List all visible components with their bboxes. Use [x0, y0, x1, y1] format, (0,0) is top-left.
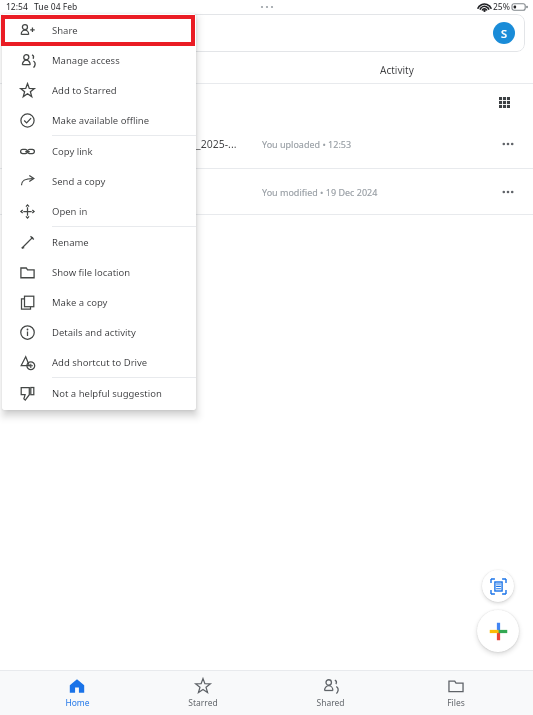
staticText: Add shortcut to Drive [52, 356, 148, 369]
button[interactable]: Shared [280, 671, 380, 715]
button[interactable]: Show file location [2, 257, 196, 287]
button[interactable]: Account [493, 22, 515, 44]
button[interactable]: Share [2, 15, 196, 45]
staticText: Add to Starred [52, 84, 117, 97]
staticText: Copy link [52, 145, 93, 158]
staticText: You modified • 19 Dec 2024 [262, 186, 378, 198]
staticText: Manage access [52, 54, 120, 67]
button[interactable]: Add shortcut to Drive [2, 347, 196, 377]
button[interactable]: New [477, 610, 519, 652]
button[interactable]: Manage access [2, 45, 196, 75]
button[interactable]: Home [27, 671, 127, 715]
staticText: Details and activity [52, 326, 136, 339]
staticText: Not a helpful suggestion [52, 387, 162, 400]
staticText: Activity [380, 63, 414, 77]
button[interactable]: Scan [482, 570, 514, 602]
staticText: 25% [493, 1, 510, 13]
button[interactable]: More options [495, 179, 521, 205]
button[interactable]: Details and activity [2, 317, 196, 347]
button[interactable]: Rename [2, 227, 196, 257]
staticText: Share [52, 24, 78, 37]
staticText: S [501, 26, 508, 41]
button[interactable]: Send a copy [2, 166, 196, 196]
button[interactable]: Make a copy [2, 287, 196, 317]
staticText: Files [447, 697, 465, 709]
button[interactable]: Not a helpful suggestion [2, 378, 196, 408]
button[interactable]: Add to Starred [2, 75, 196, 105]
staticText: You uploaded • 12:53 [262, 138, 352, 150]
button[interactable]: Copy link [2, 136, 196, 166]
staticText: Open in [52, 205, 88, 218]
staticText: Make available offline [52, 114, 150, 127]
staticText: Send a copy [52, 175, 106, 188]
staticText: Make a copy [52, 296, 108, 309]
button[interactable]: Account [8, 14, 525, 52]
button[interactable]: Open in [2, 196, 196, 226]
button[interactable]: More options [495, 131, 521, 157]
staticText: Home [65, 697, 90, 709]
staticText: Shared [316, 697, 345, 709]
staticText: _2025-... [196, 137, 237, 151]
button[interactable]: Files [406, 671, 506, 715]
staticText: Tue 04 Feb [34, 1, 78, 13]
staticText: Show file location [52, 266, 131, 279]
staticText: Rename [52, 236, 89, 249]
staticText: Starred [188, 697, 218, 709]
staticText: 12:54 [6, 1, 28, 13]
button[interactable]: Make available offline [2, 105, 196, 135]
button[interactable]: Grid view [493, 91, 515, 113]
button[interactable]: Starred [153, 671, 253, 715]
